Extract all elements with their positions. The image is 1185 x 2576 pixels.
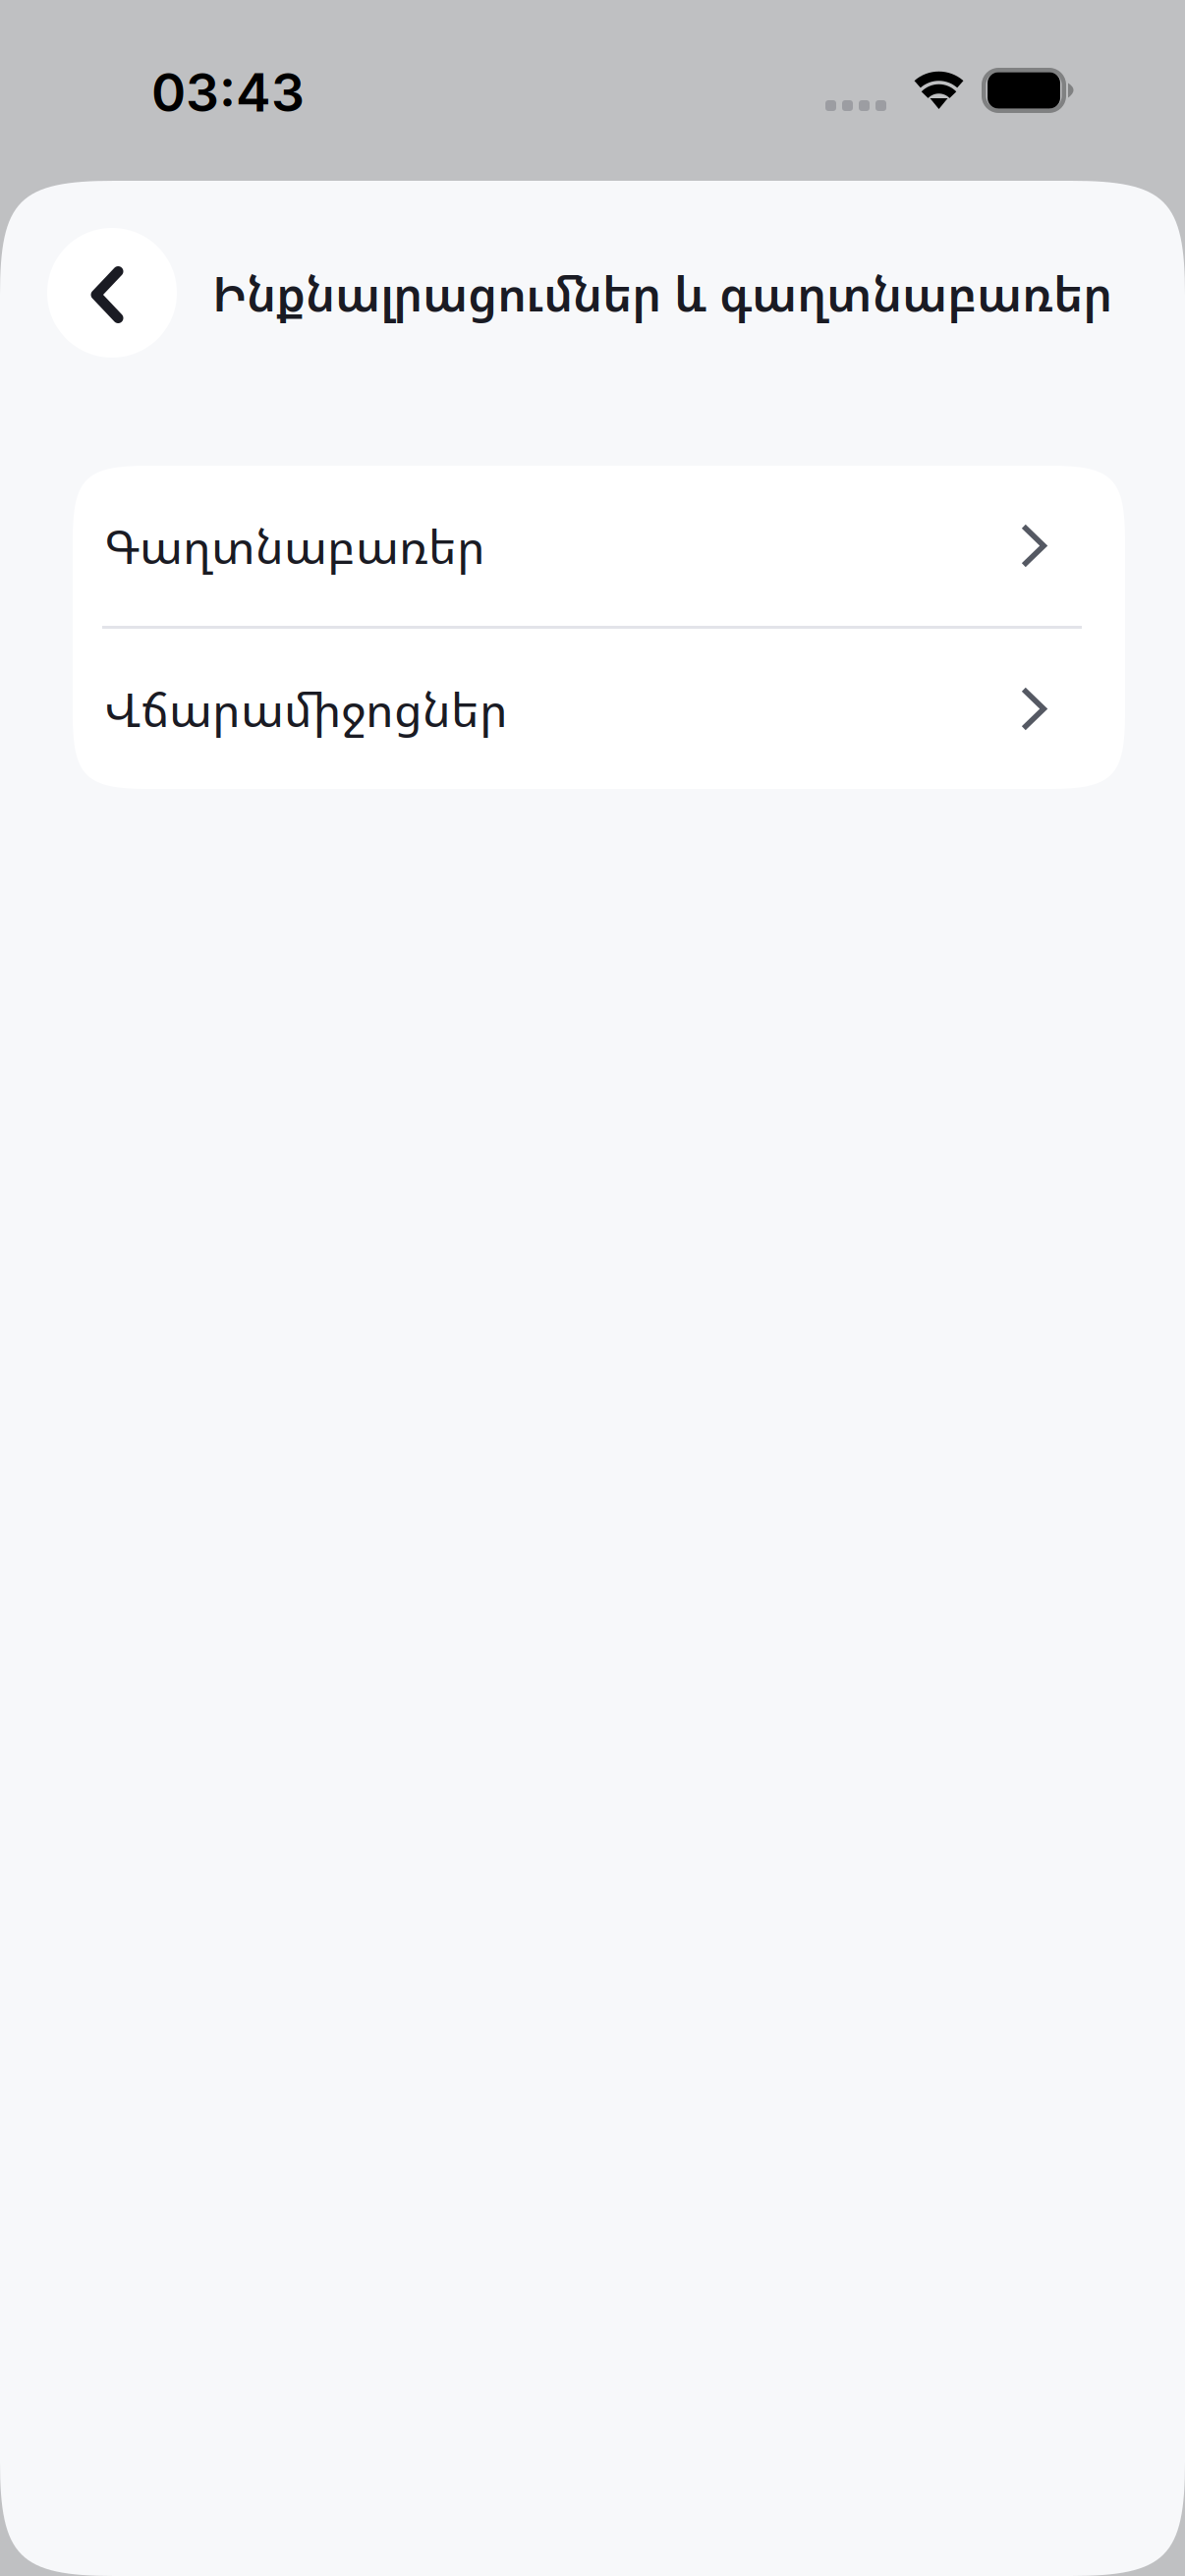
staticText: 03:43 [151,61,305,124]
button[interactable]: Back [47,228,177,358]
button[interactable]: Վճարամիջոցներ [73,629,1125,789]
staticText: Վճարամիջոցներ [104,677,508,741]
button[interactable]: Գաղտնաբառեր [73,466,1125,626]
staticText: Գաղտնաբառեր [104,514,485,578]
staticText: Ինքնալրացումներ և գաղտնաբառեր [212,260,1112,325]
